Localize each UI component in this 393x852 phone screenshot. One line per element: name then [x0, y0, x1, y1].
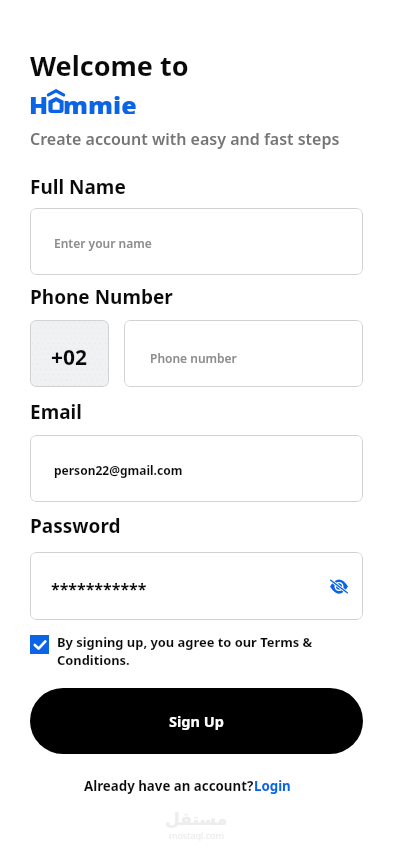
staticText: +02	[51, 343, 88, 372]
staticText: Phone Number	[30, 284, 173, 310]
button[interactable]: ***********	[30, 552, 363, 620]
staticText: Phone number	[150, 350, 237, 366]
button[interactable]: Sign Up	[30, 688, 363, 754]
staticText: Password	[30, 513, 121, 539]
staticText: Full Name	[30, 174, 126, 200]
button[interactable]: By signing up, you agree to our Terms & …	[30, 633, 363, 669]
staticText: مستقل	[165, 809, 228, 829]
staticText: mostaql.com	[169, 829, 224, 841]
staticText: By signing up, you agree to our Terms & …	[57, 633, 363, 669]
staticText: Email	[30, 399, 82, 425]
staticText: person22@gmail.com	[54, 462, 183, 478]
button[interactable]: Login	[254, 777, 291, 795]
button[interactable]: Phone number	[124, 320, 363, 387]
staticText: Enter your name	[54, 235, 152, 251]
staticText: mmie	[63, 88, 137, 114]
staticText: Create account with easy and fast steps	[30, 128, 340, 150]
staticText: Welcome to	[30, 47, 189, 84]
staticText: H	[29, 88, 49, 114]
button[interactable]: Toggle password visibility	[324, 571, 354, 601]
button[interactable]: person22@gmail.com	[30, 435, 363, 502]
staticText: Already have an account?	[84, 777, 254, 795]
button[interactable]: +02	[30, 320, 109, 387]
staticText: Sign Up	[169, 711, 224, 731]
staticText: ***********	[51, 578, 147, 600]
button[interactable]: Enter your name	[30, 208, 363, 275]
